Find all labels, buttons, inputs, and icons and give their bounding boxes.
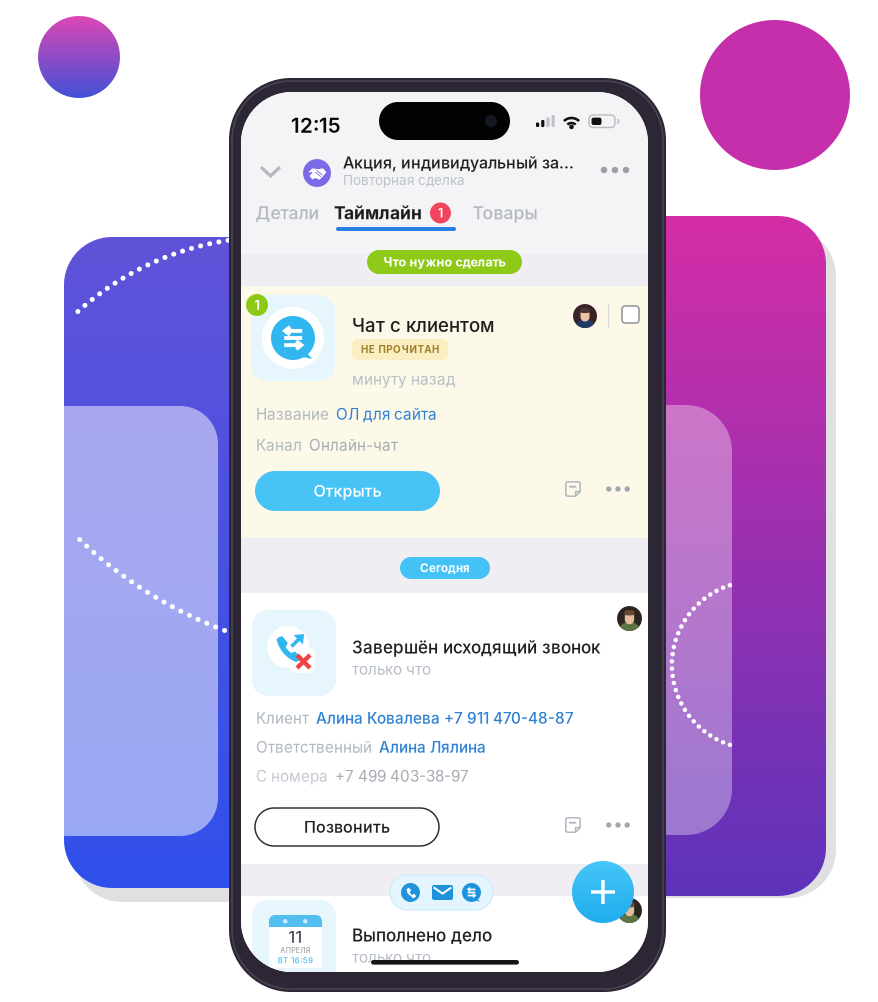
staticText: +7 499 403-38-97 xyxy=(335,767,469,785)
staticText: ВТ 16:59 xyxy=(278,956,313,965)
staticText: Сегодня xyxy=(420,561,470,575)
button[interactable]: Ещё xyxy=(603,814,633,836)
staticText: Таймлайн xyxy=(334,202,422,224)
staticText: Клиент xyxy=(256,709,309,727)
button[interactable]: Сегодня xyxy=(400,557,490,579)
button[interactable]: Ещё xyxy=(593,148,637,192)
staticText: только что xyxy=(352,660,431,678)
button[interactable]: Написать xyxy=(432,885,453,900)
staticText: 1 xyxy=(254,297,259,313)
staticText: 1 xyxy=(438,205,443,220)
staticText: Товары xyxy=(472,202,537,224)
staticText: Название xyxy=(256,405,329,423)
button[interactable]: Ещё xyxy=(603,478,633,500)
staticText: Ответственный xyxy=(256,738,372,756)
button[interactable]: Комментарий xyxy=(558,478,588,500)
staticText: Детали xyxy=(255,202,319,224)
staticText: Позвонить xyxy=(304,817,390,837)
staticText: С номера xyxy=(256,767,328,785)
staticText: Открыть xyxy=(313,481,381,501)
button[interactable]: Что нужно сделать xyxy=(367,250,522,274)
button[interactable]: Позвонить xyxy=(401,883,420,902)
staticText: Алина Ковалева +7 911 470-48-87 xyxy=(316,709,574,727)
staticText: Акция, индивидуальный за... xyxy=(343,153,574,172)
staticText: 12:15 xyxy=(291,113,341,138)
button[interactable]: Комментарий xyxy=(558,814,588,836)
staticText: Чат с клиентом xyxy=(352,314,495,336)
button[interactable]: Открыть xyxy=(255,471,440,511)
button[interactable]: Позвонить xyxy=(255,808,439,846)
button[interactable]: Добавить xyxy=(572,861,634,923)
button[interactable]: Свернуть xyxy=(251,152,291,196)
button[interactable]: Таймлайн xyxy=(332,196,453,230)
staticText: Повторная сделка xyxy=(343,172,465,188)
staticText: Онлайн-чат xyxy=(309,436,398,454)
staticText: АПРЕЛЯ xyxy=(280,946,311,955)
button[interactable]: Товары xyxy=(467,196,543,230)
staticText: Что нужно сделать xyxy=(383,254,505,269)
button[interactable]: Детали xyxy=(251,196,324,230)
staticText: 11 xyxy=(288,927,302,947)
staticText: Алина Лялина xyxy=(379,738,486,756)
staticText: только что xyxy=(352,948,431,966)
staticText: минуту назад xyxy=(352,370,456,388)
staticText: Выполнено дело xyxy=(352,925,492,946)
staticText: Завершён исходящий звонок xyxy=(352,637,600,658)
staticText: НЕ ПРОЧИТАН xyxy=(361,344,439,355)
staticText: Канал xyxy=(256,436,302,454)
button[interactable]: Чат xyxy=(462,883,481,902)
button[interactable]: Отметить выполненным xyxy=(622,306,639,323)
staticText: ОЛ для сайта xyxy=(336,405,437,423)
